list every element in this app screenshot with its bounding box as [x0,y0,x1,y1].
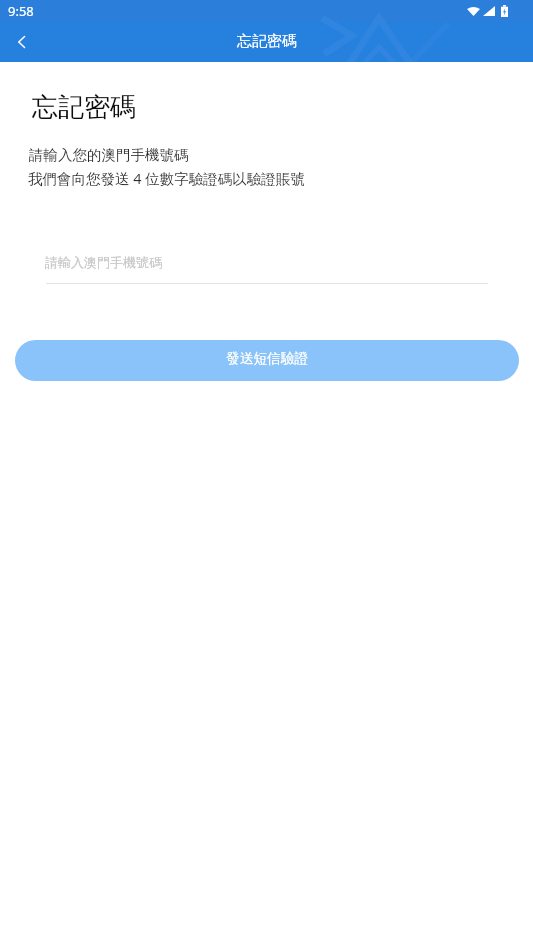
button[interactable]: 發送短信驗證 [15,340,519,381]
staticText: 發送短信驗證 [226,350,309,367]
staticText: 請輸入澳門手機號碼 [45,254,162,270]
staticText: 請輸入您的澳門手機號碼 [29,146,189,164]
staticText: 忘記密碼 [237,32,297,51]
staticText: 忘記密碼 [32,91,136,124]
staticText: 9:58 [8,2,34,20]
button[interactable]: 請輸入澳門手機號碼 [45,243,488,284]
staticText: 我們會向您發送 4 位數字驗證碼以驗證賬號 [28,168,305,188]
button[interactable]: Back [0,22,44,62]
